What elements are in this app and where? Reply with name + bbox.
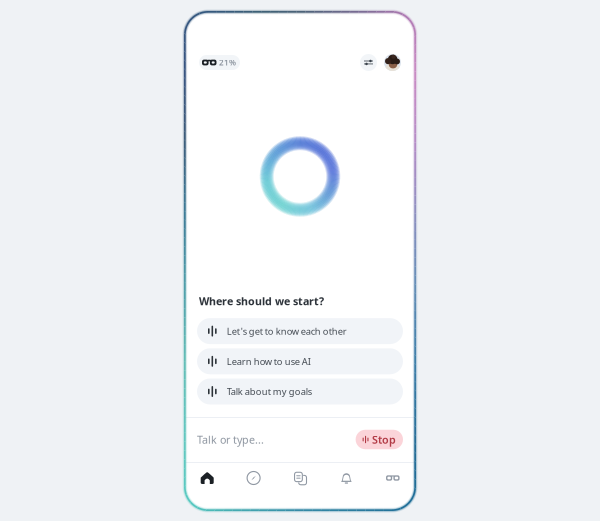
button[interactable]: Let's get to know each other	[197, 318, 403, 344]
staticText: Talk about my goals	[227, 385, 312, 398]
staticText: 21%	[219, 57, 236, 68]
staticText: Where should we start?	[199, 294, 324, 308]
button[interactable]: Glasses	[370, 462, 416, 494]
staticText: Stop	[372, 432, 396, 447]
button[interactable]: Talk about my goals	[197, 378, 403, 404]
button[interactable]: Chats	[277, 462, 323, 494]
button[interactable]: Settings	[360, 54, 377, 71]
button[interactable]: Stop	[356, 430, 403, 449]
staticText: Let's get to know each other	[227, 325, 347, 337]
button[interactable]: Explore	[230, 462, 277, 494]
button[interactable]: Profile	[384, 54, 401, 71]
button[interactable]: Notifications	[323, 462, 370, 494]
button[interactable]: Glasses battery 21 percent	[199, 55, 240, 70]
button[interactable]: Learn how to use AI	[197, 348, 403, 374]
staticText: Learn how to use AI	[227, 355, 311, 367]
button[interactable]: Home	[184, 462, 230, 494]
staticText: Talk or type...	[197, 432, 264, 447]
